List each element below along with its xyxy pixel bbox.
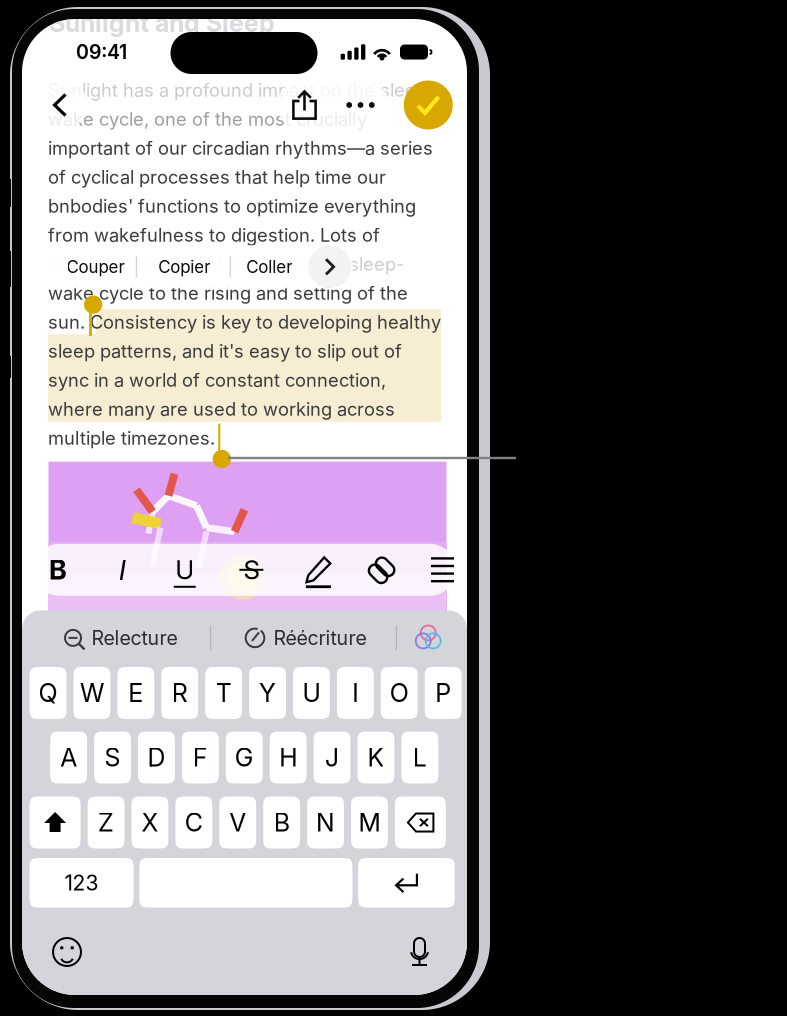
button[interactable]: M [351,796,388,848]
button[interactable]: Add link [355,544,407,596]
staticText: M [358,807,380,838]
button[interactable]: Bold [32,544,84,596]
button[interactable]: C [175,796,212,848]
button[interactable] [395,796,446,848]
staticText: multiple timezones. [48,427,215,449]
button[interactable]: Copier [156,245,213,288]
button[interactable]: N [307,796,344,848]
button[interactable]: P [425,667,462,719]
button[interactable]: S [94,731,131,783]
staticText: wake cycle, one of the most crucially [48,108,367,130]
staticText: U [175,554,194,586]
staticText: of cyclical processes that help time our [48,166,386,188]
staticText: L [413,742,427,773]
button[interactable]: O [381,667,418,719]
button[interactable] [139,858,352,908]
button[interactable]: Coller [244,245,294,288]
button[interactable] [30,796,81,848]
staticText: T [216,678,232,708]
staticText: B [274,807,290,838]
staticText: bnbodies' functions to optimize everythi… [48,195,416,217]
staticText: Coller [246,257,292,277]
staticText: S [243,554,259,586]
button[interactable]: Apple Intelligence [411,621,445,655]
button[interactable]: Dictation [408,935,431,964]
button[interactable]: More actions [308,245,351,288]
staticText: where many are used to working across [48,398,395,420]
staticText: H [279,742,297,773]
button[interactable]: G [226,731,263,783]
button[interactable]: More [332,80,389,130]
staticText: B [49,553,67,586]
staticText: N [316,807,335,838]
staticText: important of our circadian rhythms—a ser… [48,137,433,159]
button[interactable]: T [205,667,242,719]
button[interactable] [358,858,455,908]
button[interactable]: Réécriture [248,616,363,660]
button[interactable]: Lists [416,544,468,596]
staticText: 09:41 [76,40,127,64]
button[interactable]: H [270,731,307,783]
staticText: X [141,807,158,838]
button[interactable]: V [219,796,256,848]
staticText: Q [38,678,57,708]
button[interactable]: Q [30,667,66,719]
button[interactable]: Z [88,796,124,848]
staticText: exposure to sunlight helps link our slee… [48,253,404,275]
button[interactable]: Underline [159,544,211,596]
button[interactable]: Y [249,667,286,719]
staticText: Y [259,678,276,708]
staticText: I [352,678,358,708]
button[interactable]: Strikethrough [225,544,277,596]
staticText: Relecture [91,626,177,650]
staticText: S [104,742,120,773]
staticText: Couper [66,257,124,277]
staticText: K [367,742,384,773]
staticText: D [147,742,165,773]
button[interactable]: Relecture [64,616,175,660]
staticText: Réécriture [273,626,366,650]
staticText: Sunlight has a profound impact on the sl… [48,79,435,101]
staticText: I [119,553,126,587]
button[interactable]: Back [37,80,87,130]
staticText: E [128,678,143,708]
staticText: Copier [158,257,210,277]
button[interactable]: Couper [67,245,124,288]
button[interactable]: D [138,731,175,783]
staticText: A [60,742,77,773]
button[interactable]: K [357,731,394,783]
staticText: W [80,678,104,708]
button[interactable]: F [182,731,219,783]
button[interactable]: Share [277,80,332,130]
button[interactable]: Done [404,80,453,129]
button[interactable]: J [314,731,350,783]
button[interactable]: A [50,731,87,783]
staticText: 123 [65,870,99,895]
button[interactable]: B [263,796,300,848]
staticText: from wakefulness to digestion. Lots of [48,224,380,246]
staticText: Z [98,807,114,838]
staticText: J [325,742,339,773]
staticText: sync in a world of constant connection, [48,369,386,391]
button[interactable]: 123 [30,858,134,908]
button[interactable]: R [161,667,198,719]
button[interactable]: Highlight [292,544,344,596]
button[interactable]: Emoji keyboard [52,937,82,967]
staticText: R [172,678,188,708]
staticText: U [302,678,320,708]
staticText: F [193,742,208,773]
button[interactable]: Italic [96,544,148,596]
staticText: P [435,678,451,708]
staticText: C [185,807,203,838]
button[interactable]: W [73,667,110,719]
staticText: Sunlight and Sleep [49,8,275,38]
button[interactable]: E [117,667,154,719]
button[interactable]: X [131,796,168,848]
staticText: V [229,807,246,838]
staticText: wake cycle to the rising and setting of … [48,282,408,304]
button[interactable]: L [401,731,438,783]
staticText: G [235,742,254,773]
button[interactable]: I [337,667,374,719]
button[interactable]: U [293,667,330,719]
staticText: O [390,678,409,708]
